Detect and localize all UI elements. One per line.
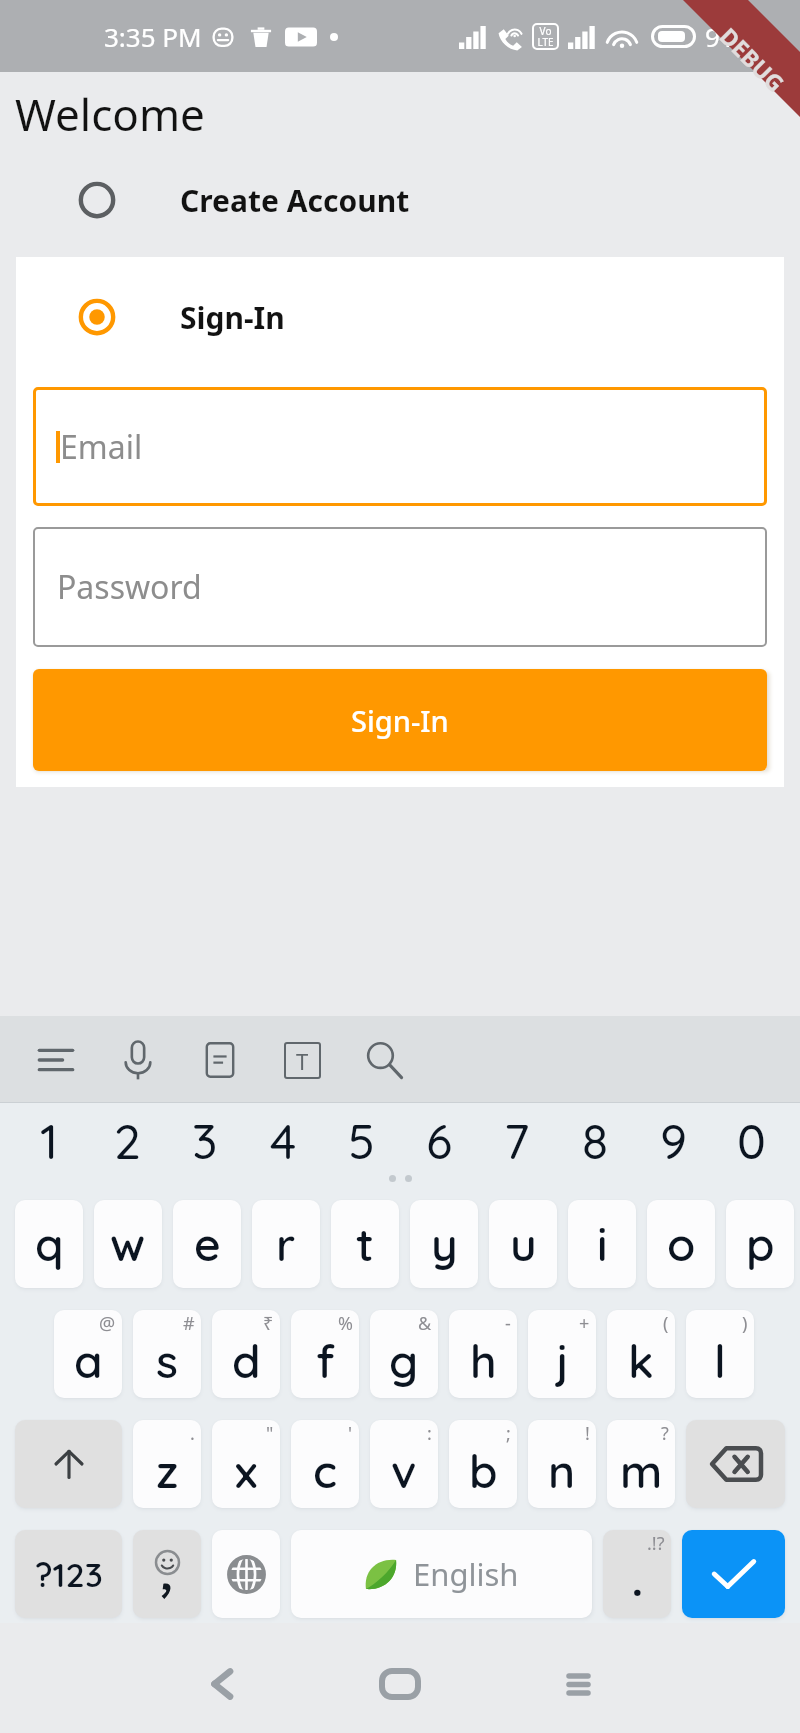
button[interactable]: Back bbox=[177, 1639, 267, 1729]
staticText: @ bbox=[99, 1311, 116, 1336]
button[interactable]: Recents bbox=[533, 1639, 623, 1729]
staticText: v bbox=[391, 1442, 417, 1500]
button[interactable]: : bbox=[370, 1420, 438, 1508]
button[interactable]: ?123 bbox=[15, 1530, 122, 1618]
button[interactable]: .!? bbox=[603, 1530, 671, 1618]
staticText: % bbox=[338, 1311, 353, 1336]
staticText: ( bbox=[663, 1311, 669, 1336]
button[interactable]: ; bbox=[449, 1420, 517, 1508]
button[interactable]: 2 bbox=[93, 1111, 161, 1171]
staticText: Email bbox=[60, 425, 143, 469]
staticText: x bbox=[235, 1442, 258, 1500]
staticText: ; bbox=[506, 1421, 511, 1446]
button[interactable]: o bbox=[647, 1200, 715, 1288]
button[interactable]: " bbox=[212, 1420, 280, 1508]
button[interactable]: Change language bbox=[212, 1530, 280, 1618]
button[interactable]: p bbox=[726, 1200, 794, 1288]
button[interactable]: 6 bbox=[405, 1111, 473, 1171]
staticText: z bbox=[156, 1442, 179, 1500]
staticText: i bbox=[597, 1215, 608, 1273]
button[interactable]: ? bbox=[607, 1420, 675, 1508]
staticText: ?123 bbox=[35, 1553, 103, 1596]
staticText: Create Account bbox=[180, 180, 410, 221]
button[interactable]: w bbox=[94, 1200, 162, 1288]
staticText: l bbox=[714, 1332, 726, 1390]
button[interactable]: Text formatting bbox=[278, 1036, 326, 1084]
button[interactable]: t bbox=[331, 1200, 399, 1288]
button[interactable]: 9 bbox=[639, 1111, 707, 1171]
button[interactable]: 8 bbox=[561, 1111, 629, 1171]
staticText: .!? bbox=[647, 1531, 665, 1556]
staticText: f bbox=[316, 1332, 335, 1390]
staticText: " bbox=[266, 1421, 274, 1446]
staticText: English bbox=[413, 1553, 519, 1595]
button[interactable]: . bbox=[133, 1420, 201, 1508]
staticText: 4 bbox=[270, 1111, 297, 1171]
button[interactable]: ' bbox=[291, 1420, 359, 1508]
staticText: 0 bbox=[737, 1111, 766, 1171]
staticText: s bbox=[156, 1332, 178, 1390]
button[interactable]: # bbox=[133, 1310, 201, 1398]
staticText: a bbox=[74, 1332, 103, 1390]
staticText: r bbox=[276, 1215, 296, 1273]
staticText: m bbox=[620, 1442, 663, 1500]
button[interactable]: Voice input bbox=[114, 1036, 162, 1084]
button[interactable]: e bbox=[173, 1200, 241, 1288]
button[interactable]: Emoji and comma bbox=[133, 1530, 201, 1618]
button[interactable]: Menu bbox=[32, 1036, 80, 1084]
button[interactable]: 3 bbox=[171, 1111, 239, 1171]
button[interactable]: Home bbox=[355, 1639, 445, 1729]
button[interactable]: 7 bbox=[483, 1111, 551, 1171]
staticText: p bbox=[746, 1215, 775, 1273]
button[interactable]: Search bbox=[360, 1036, 408, 1084]
staticText: # bbox=[183, 1311, 195, 1336]
button[interactable]: Password bbox=[33, 527, 767, 647]
staticText: . bbox=[632, 1555, 643, 1607]
staticText: y bbox=[431, 1215, 458, 1273]
staticText: 8 bbox=[582, 1111, 609, 1171]
staticText: & bbox=[418, 1311, 432, 1336]
button[interactable]: - bbox=[449, 1310, 517, 1398]
button[interactable]: y bbox=[410, 1200, 478, 1288]
button[interactable]: & bbox=[370, 1310, 438, 1398]
button[interactable]: 5 bbox=[327, 1111, 395, 1171]
button[interactable]: 4 bbox=[249, 1111, 317, 1171]
staticText: Welcome bbox=[15, 84, 205, 144]
staticText: 9 bbox=[660, 1111, 687, 1171]
button[interactable]: @ bbox=[54, 1310, 122, 1398]
button[interactable]: Sign-In bbox=[33, 669, 767, 771]
button[interactable]: English bbox=[291, 1530, 592, 1618]
staticText: 6 bbox=[426, 1111, 453, 1171]
staticText: 1 bbox=[40, 1111, 59, 1171]
button[interactable]: ₹ bbox=[212, 1310, 280, 1398]
button[interactable]: 0 bbox=[717, 1111, 785, 1171]
button[interactable]: + bbox=[528, 1310, 596, 1398]
button[interactable]: Backspace bbox=[686, 1420, 785, 1508]
button[interactable]: Clipboard bbox=[196, 1036, 244, 1084]
button[interactable]: Enter bbox=[682, 1530, 785, 1618]
button[interactable]: Create Account bbox=[0, 166, 800, 234]
button[interactable]: Sign-In bbox=[16, 281, 784, 353]
button[interactable]: Email bbox=[33, 387, 767, 506]
button[interactable]: ) bbox=[686, 1310, 754, 1398]
staticText: 91% bbox=[705, 19, 757, 54]
staticText: n bbox=[548, 1442, 576, 1500]
staticText: DEBUG bbox=[714, 20, 792, 99]
button[interactable]: ( bbox=[607, 1310, 675, 1398]
staticText: ! bbox=[585, 1421, 590, 1446]
staticText: t bbox=[356, 1215, 374, 1273]
staticText: j bbox=[556, 1332, 569, 1390]
staticText: b bbox=[469, 1442, 498, 1500]
button[interactable]: % bbox=[291, 1310, 359, 1398]
button[interactable]: Shift bbox=[15, 1420, 122, 1508]
staticText: k bbox=[628, 1332, 654, 1390]
staticText: o bbox=[667, 1215, 696, 1273]
button[interactable]: r bbox=[252, 1200, 320, 1288]
button[interactable]: 1 bbox=[15, 1111, 83, 1171]
staticText: e bbox=[194, 1215, 221, 1273]
button[interactable]: i bbox=[568, 1200, 636, 1288]
staticText: g bbox=[389, 1332, 419, 1390]
button[interactable]: u bbox=[489, 1200, 557, 1288]
button[interactable]: q bbox=[15, 1200, 83, 1288]
button[interactable]: ! bbox=[528, 1420, 596, 1508]
